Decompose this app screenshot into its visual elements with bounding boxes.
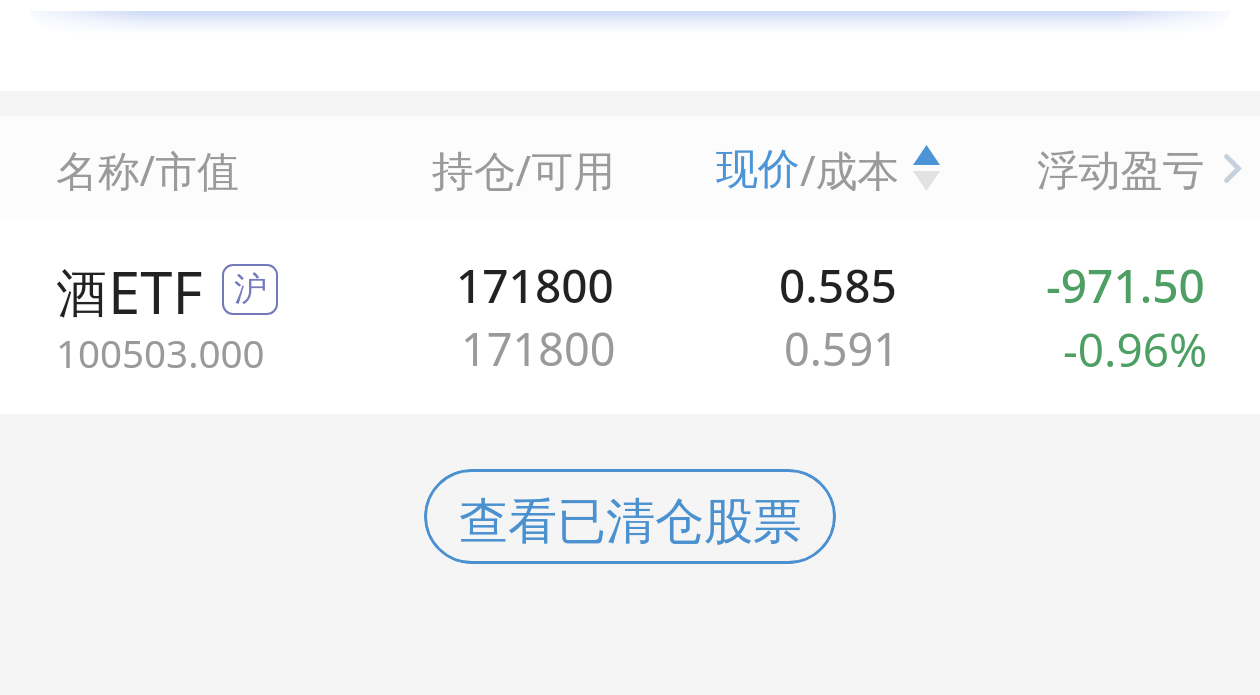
- staticText: 持仓/可用: [432, 141, 615, 198]
- staticText: 171800: [461, 318, 616, 379]
- staticText: -0.96%: [1063, 318, 1208, 381]
- staticText: 查看已清仓股票: [459, 491, 802, 553]
- staticText: 0.591: [784, 318, 900, 379]
- staticText: 100503.000: [56, 327, 265, 379]
- button[interactable]: 查看已清仓股票: [424, 469, 836, 564]
- button[interactable]: 名称/市值: [46, 130, 246, 202]
- staticText: 171800: [456, 254, 614, 317]
- staticText: 名称/市值: [56, 141, 239, 198]
- staticText: -971.50: [1046, 254, 1205, 317]
- button[interactable]: 现价: [706, 130, 917, 202]
- staticText: 酒: [56, 262, 107, 326]
- button[interactable]: 持仓/可用: [422, 130, 620, 202]
- button[interactable]: 酒ETF 持仓详情: [0, 220, 1260, 414]
- staticText: /成本: [800, 141, 900, 198]
- staticText: 沪: [234, 268, 267, 310]
- staticText: 现价: [716, 143, 800, 196]
- staticText: 0.585: [779, 254, 897, 317]
- staticText: ETF: [108, 252, 203, 331]
- button[interactable]: 浮动盈亏 More columns: [1027, 130, 1223, 202]
- staticText: 浮动盈亏: [1037, 145, 1205, 198]
